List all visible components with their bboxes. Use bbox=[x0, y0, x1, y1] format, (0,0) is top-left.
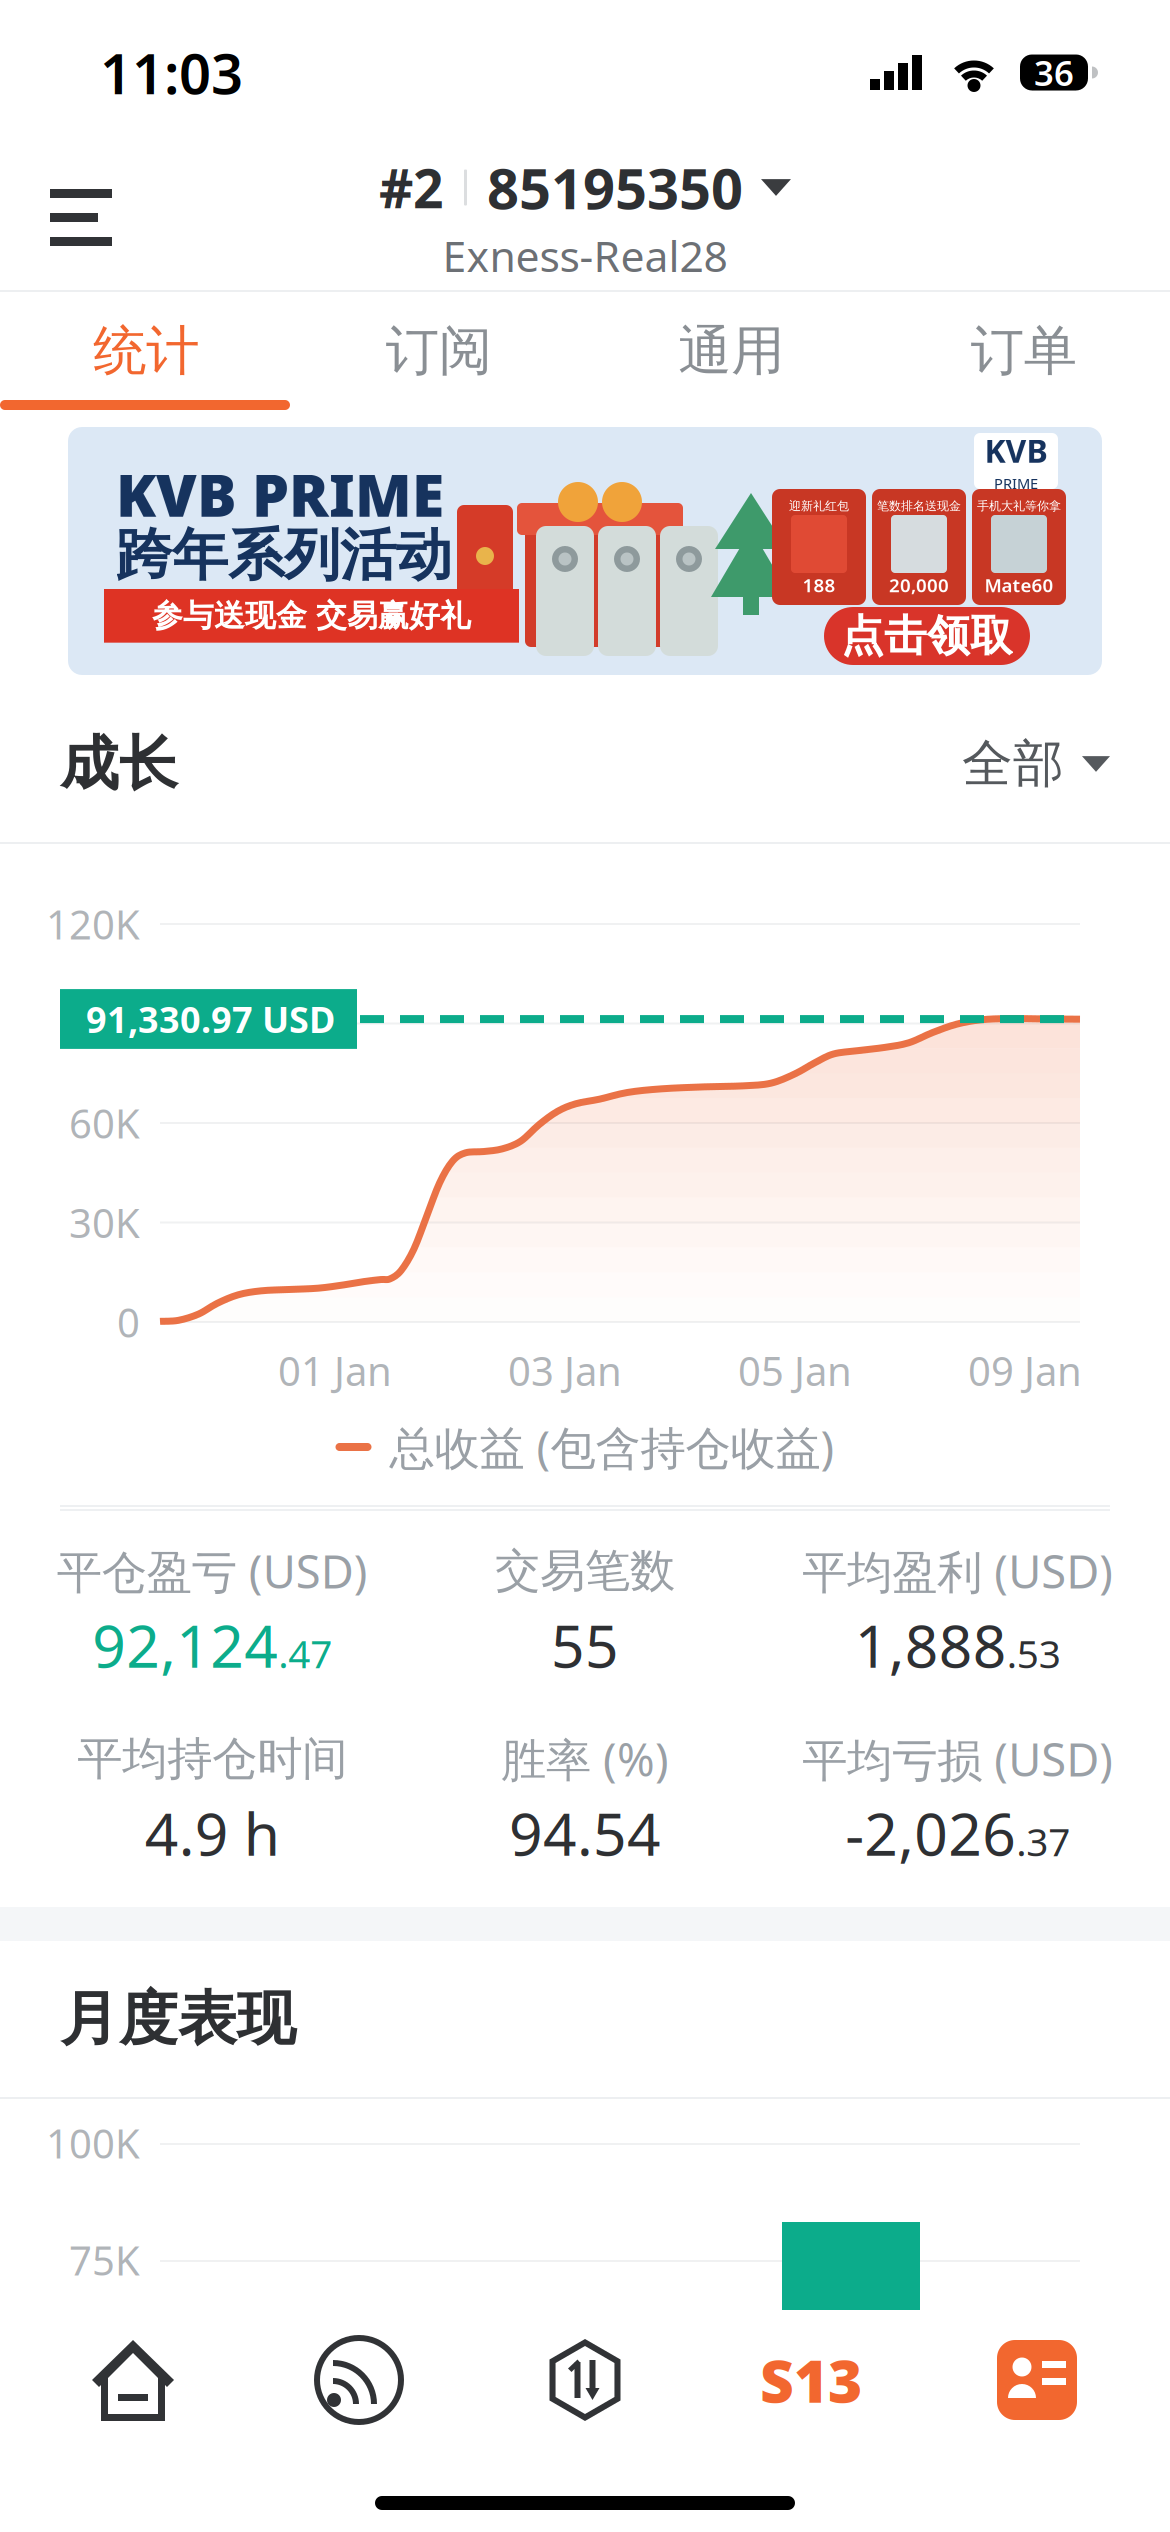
button[interactable]: #2 bbox=[379, 149, 791, 285]
staticText: 胜率 (%) bbox=[501, 1729, 669, 1789]
staticText: Mate60 bbox=[984, 573, 1053, 597]
staticText: 迎新礼红包 bbox=[789, 499, 849, 513]
staticText: 总收益 (包含持仓收益) bbox=[389, 1417, 834, 1477]
staticText: 36 bbox=[1034, 49, 1074, 95]
staticText: 点击领取 bbox=[841, 610, 1013, 662]
staticText: 月度表现 bbox=[60, 1983, 296, 2055]
staticText: 30K bbox=[69, 1196, 140, 1249]
staticText: .47 bbox=[278, 1628, 332, 1679]
staticText: 平均持仓时间 bbox=[77, 1731, 347, 1787]
button[interactable]: Profile bbox=[924, 2338, 1150, 2422]
button[interactable]: 通用 bbox=[585, 292, 877, 410]
staticText: 订单 bbox=[971, 318, 1077, 384]
staticText: KVB bbox=[984, 429, 1047, 471]
staticText: 1,888 bbox=[855, 1606, 1007, 1684]
button[interactable]: 统计 bbox=[0, 292, 292, 410]
staticText: .37 bbox=[1016, 1816, 1070, 1867]
staticText: 跨年系列活动 bbox=[116, 521, 452, 590]
button[interactable]: 订阅 bbox=[292, 292, 585, 410]
button[interactable]: Signals bbox=[246, 2338, 472, 2422]
staticText: 通用 bbox=[678, 318, 784, 384]
staticText: 平仓盈亏 (USD) bbox=[57, 1541, 368, 1601]
staticText: 100K bbox=[46, 2116, 140, 2169]
staticText: 手机大礼等你拿 bbox=[977, 499, 1061, 513]
staticText: 平均亏损 (USD) bbox=[802, 1729, 1113, 1789]
staticText: 03 Jan bbox=[508, 1344, 622, 1397]
staticText: 11:03 bbox=[100, 35, 243, 110]
staticText: 05 Jan bbox=[738, 1344, 852, 1397]
staticText: Exness-Real28 bbox=[442, 227, 727, 284]
staticText: 60K bbox=[69, 1096, 140, 1149]
staticText: KVB PRIME bbox=[116, 455, 444, 533]
button[interactable]: 订单 bbox=[877, 292, 1170, 410]
staticText: 笔数排名送现金 bbox=[877, 499, 961, 513]
staticText: 91,330.97 USD bbox=[86, 995, 335, 1043]
staticText: 09 Jan bbox=[968, 1344, 1082, 1397]
button[interactable]: S13 bbox=[698, 2338, 924, 2422]
staticText: 92,124 bbox=[92, 1606, 278, 1684]
button[interactable]: Home bbox=[20, 2338, 246, 2422]
staticText: 4.9 h bbox=[145, 1794, 280, 1872]
staticText: 01 Jan bbox=[278, 1344, 392, 1397]
staticText: 55 bbox=[551, 1606, 619, 1684]
staticText: 85195350 bbox=[487, 150, 743, 225]
staticText: 参与送现金 交易赢好礼 bbox=[152, 597, 471, 635]
staticText: 成长 bbox=[60, 728, 178, 800]
staticText: PRIME bbox=[994, 473, 1038, 493]
staticText: S13 bbox=[760, 2341, 862, 2419]
staticText: 75K bbox=[69, 2233, 140, 2286]
staticText: -2,026 bbox=[845, 1794, 1016, 1872]
button[interactable]: Trade bbox=[472, 2338, 698, 2422]
staticText: 188 bbox=[802, 573, 835, 597]
staticText: #2 bbox=[379, 152, 444, 223]
staticText: 120K bbox=[46, 897, 140, 950]
staticText: .53 bbox=[1007, 1628, 1061, 1679]
staticText: 20,000 bbox=[889, 573, 949, 597]
button[interactable]: 迎新礼红包 bbox=[0, 399, 1170, 697]
staticText: 94.54 bbox=[509, 1794, 661, 1872]
button[interactable]: Menu bbox=[0, 157, 146, 278]
staticText: 统计 bbox=[93, 318, 199, 384]
staticText: 平均盈利 (USD) bbox=[802, 1541, 1113, 1601]
staticText: 交易笔数 bbox=[495, 1543, 675, 1599]
staticText: 订阅 bbox=[386, 318, 492, 384]
button[interactable]: 全部 bbox=[962, 733, 1110, 795]
staticText: 全部 bbox=[962, 733, 1064, 795]
staticText: 0 bbox=[117, 1295, 140, 1348]
